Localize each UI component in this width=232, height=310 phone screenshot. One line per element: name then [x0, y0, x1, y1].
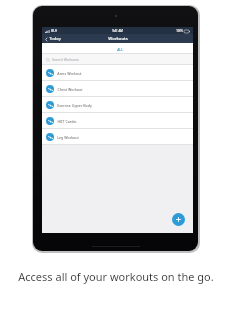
staticText: 100%	[176, 29, 183, 33]
staticText: Wi-Fi	[51, 29, 57, 33]
button[interactable]: Today	[45, 36, 61, 42]
button[interactable]: Chest Workout	[42, 81, 193, 97]
staticText: Access all of your workouts on the go.	[18, 269, 214, 284]
staticText: Search Workouts	[52, 57, 79, 62]
button[interactable]: Add workout	[172, 213, 185, 226]
staticText: Arms Workout	[57, 71, 82, 76]
staticText: Workouts	[108, 36, 128, 42]
staticText: Today	[49, 36, 61, 42]
button[interactable]: Exercise Upper Body	[42, 97, 193, 113]
staticText: Chest Workout	[57, 87, 83, 92]
staticText: Exercise Upper Body	[57, 103, 92, 108]
staticText: 9:41 AM	[112, 29, 123, 33]
button[interactable]: Search Workouts	[42, 54, 193, 65]
staticText: Leg Workout	[57, 135, 79, 140]
button[interactable]: Arms Workout	[42, 65, 193, 81]
button[interactable]: HIIT Cardio	[42, 113, 193, 129]
button[interactable]: Leg Workout	[42, 129, 193, 145]
button[interactable]: ALL	[47, 43, 193, 54]
staticText: ALL	[117, 47, 123, 51]
staticText: HIIT Cardio	[57, 119, 77, 124]
